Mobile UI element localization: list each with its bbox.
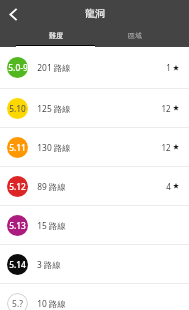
staticText: 5.13 bbox=[9, 220, 26, 231]
staticText: 5.10 bbox=[9, 103, 26, 114]
staticText: 15 路線 bbox=[37, 220, 66, 231]
staticText: 區域 bbox=[128, 31, 142, 40]
button[interactable]: 區域 bbox=[95, 26, 174, 47]
button[interactable]: 難度 bbox=[16, 26, 95, 47]
staticText: 201 路線 bbox=[37, 62, 71, 73]
button[interactable]: 5.0-9 bbox=[0, 47, 189, 88]
button[interactable]: 5.10 bbox=[0, 89, 189, 127]
staticText: 1 bbox=[166, 62, 171, 73]
staticText: 10 路線 bbox=[37, 298, 66, 309]
staticText: 5.? bbox=[12, 298, 23, 309]
button[interactable]: 5.13 bbox=[0, 206, 189, 244]
staticText: 5.14 bbox=[9, 259, 26, 270]
staticText: 5.11 bbox=[9, 142, 26, 153]
staticText: 4 bbox=[166, 181, 171, 192]
button[interactable]: 5.12 bbox=[0, 167, 189, 205]
staticText: 125 路線 bbox=[37, 103, 71, 114]
button[interactable]: 5.14 bbox=[0, 245, 189, 283]
staticText: 5.0-9 bbox=[8, 62, 28, 73]
staticText: 12 bbox=[161, 103, 171, 114]
staticText: 130 路線 bbox=[37, 142, 71, 153]
staticText: 難度 bbox=[49, 31, 63, 40]
button[interactable]: 5.11 bbox=[0, 128, 189, 166]
staticText: 5.12 bbox=[9, 181, 26, 192]
staticText: 12 bbox=[161, 142, 171, 153]
button[interactable]: Back bbox=[0, 0, 26, 26]
staticText: 龍洞 bbox=[85, 7, 105, 20]
staticText: 89 路線 bbox=[37, 181, 66, 192]
staticText: 3 路線 bbox=[37, 259, 61, 270]
button[interactable]: 5.? bbox=[0, 284, 189, 310]
